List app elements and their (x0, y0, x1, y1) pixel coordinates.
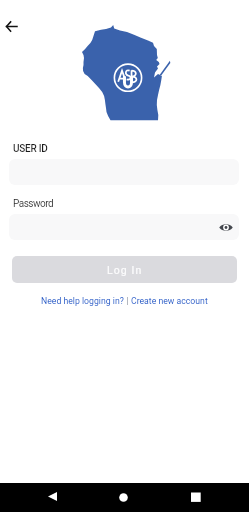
staticText: | (124, 296, 131, 306)
button[interactable]: Need help logging in? (41, 296, 124, 306)
button[interactable]: Create new account (131, 296, 208, 306)
button[interactable]: Log In (12, 256, 237, 283)
button[interactable]: Back (0, 12, 25, 40)
staticText: USER ID (13, 143, 48, 155)
button[interactable]: Back (48, 492, 57, 501)
button[interactable]: Home (119, 493, 128, 502)
button[interactable]: Recents (191, 492, 201, 502)
staticText: Password (13, 198, 54, 210)
button[interactable]: Show password (216, 217, 236, 237)
button[interactable]: Show password (9, 214, 239, 240)
staticText: Log In (107, 264, 143, 276)
